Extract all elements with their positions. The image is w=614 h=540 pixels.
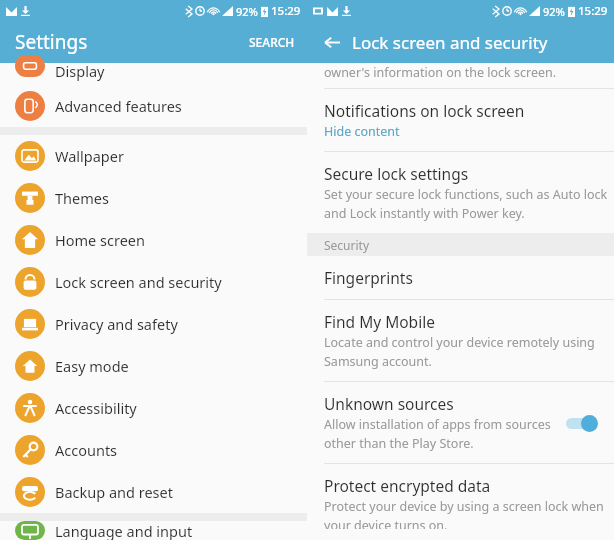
button[interactable]: Accounts (0, 429, 307, 471)
staticText: and Lock instantly with Power key. (324, 205, 525, 222)
button[interactable]: Accessibility (0, 387, 307, 429)
button[interactable]: Backup and reset (0, 471, 307, 513)
button[interactable]: Secure lock settings (307, 152, 614, 233)
staticText: Find My Mobile (324, 311, 435, 332)
button[interactable]: Lock screen and security (0, 261, 307, 303)
staticText: Settings (15, 29, 88, 55)
button[interactable]: Easy mode (0, 345, 307, 387)
staticText: 92% (236, 4, 258, 19)
staticText: your device turns on. (324, 517, 448, 529)
staticText: Allow installation of apps from sources (324, 416, 551, 433)
staticText: Easy mode (55, 356, 129, 376)
staticText: Protect your device by using a screen lo… (324, 498, 604, 515)
button[interactable]: Notifications on lock screen (307, 89, 614, 151)
staticText: Display (55, 61, 105, 81)
button[interactable]: SEARCH (237, 26, 307, 58)
button[interactable]: Display (0, 63, 307, 85)
button[interactable]: Advanced features (0, 85, 307, 127)
staticText: Lock screen and security (352, 31, 548, 54)
staticText: Accessibility (55, 398, 137, 418)
staticText: Locate and control your device remotely … (324, 334, 614, 351)
staticText: Accounts (55, 440, 118, 460)
button[interactable]: Find My Mobile (307, 300, 614, 381)
staticText: Lock screen and security (55, 272, 222, 292)
staticText: 92% (543, 4, 565, 19)
staticText: Wallpaper (55, 146, 124, 166)
staticText: 15:29 (578, 3, 608, 19)
staticText: Privacy and safety (55, 314, 178, 334)
staticText: other than the Play Store. (324, 435, 474, 452)
button[interactable]: Unknown sources (307, 382, 614, 463)
staticText: Unknown sources (324, 393, 454, 414)
staticText: 15:29 (271, 3, 301, 19)
staticText: Protect encrypted data (324, 475, 491, 496)
button[interactable]: Privacy and safety (0, 303, 307, 345)
staticText: Set your secure lock functions, such as … (324, 186, 608, 203)
button[interactable]: Fingerprints (307, 256, 614, 299)
staticText: Security (324, 237, 370, 253)
staticText: Backup and reset (55, 482, 173, 502)
staticText: Fingerprints (324, 267, 413, 288)
staticText: Themes (55, 188, 109, 208)
button[interactable]: Protect encrypted data (307, 464, 614, 540)
button[interactable]: Home screen (0, 219, 307, 261)
staticText: Notifications on lock screen (324, 100, 525, 121)
button[interactable]: Unknown sources toggle (564, 413, 602, 433)
staticText: Language and input (55, 521, 193, 540)
staticText: Samsung account. (324, 353, 432, 370)
button[interactable]: Themes (0, 177, 307, 219)
button[interactable]: Wallpaper (0, 135, 307, 177)
staticText: SEARCH (249, 34, 295, 50)
staticText: Hide content (324, 123, 400, 140)
button[interactable]: Language and input (0, 521, 307, 540)
staticText: Secure lock settings (324, 163, 469, 184)
staticText: Home screen (55, 230, 145, 250)
button[interactable]: Back (317, 28, 345, 56)
staticText: owner's information on the lock screen. (324, 64, 557, 81)
staticText: Advanced features (55, 96, 182, 116)
